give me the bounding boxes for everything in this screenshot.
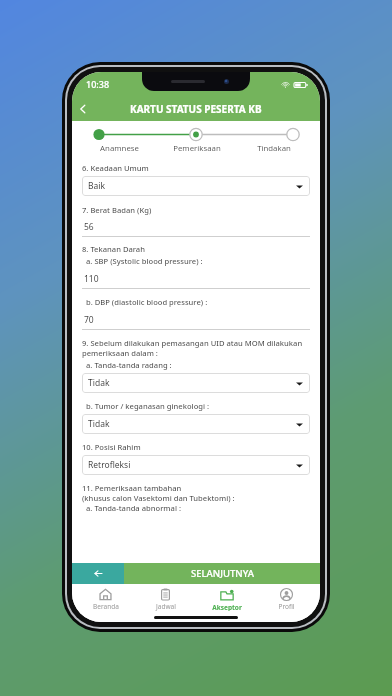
button[interactable]: Akseptor xyxy=(199,586,254,613)
staticText: Tidak xyxy=(88,377,110,389)
staticText: Tidak xyxy=(88,418,110,430)
staticText: 7. Berat Badan (Kg) xyxy=(82,205,152,215)
staticText: Retrofleksi xyxy=(88,459,131,471)
staticText: Anamnese xyxy=(100,143,139,154)
staticText: SELANJUTNYA xyxy=(191,567,254,580)
button[interactable]: Back xyxy=(72,98,94,120)
button[interactable]: 110 xyxy=(82,273,310,289)
staticText: 10. Posisi Rahim xyxy=(82,442,141,452)
staticText: 10:38 xyxy=(86,78,110,90)
button[interactable]: 56 xyxy=(82,221,310,237)
staticText: 11. Pemeriksaan tambahan xyxy=(82,483,182,493)
staticText: Pemeriksaan xyxy=(173,143,221,154)
staticText: 70 xyxy=(84,314,94,326)
staticText: 9. Sebelum dilakukan pemasangan UID atau… xyxy=(82,338,303,348)
staticText: b. DBP (diastolic blood pressure) : xyxy=(86,297,208,307)
button[interactable]: SELANJUTNYA xyxy=(124,563,320,584)
button[interactable]: Jadwal xyxy=(138,586,193,613)
staticText: Akseptor xyxy=(212,603,242,611)
button[interactable]: Beranda xyxy=(78,586,133,613)
button[interactable]: Profil xyxy=(259,586,314,613)
button[interactable]: Tidak xyxy=(82,414,310,434)
staticText: Beranda xyxy=(93,602,119,611)
staticText: KARTU STATUS PESERTA KB xyxy=(130,102,262,116)
staticText: a. Tanda-tanda radang : xyxy=(86,360,172,370)
staticText: Baik xyxy=(88,180,106,192)
button[interactable]: Tidak xyxy=(82,373,310,393)
button[interactable]: 70 xyxy=(82,314,310,330)
staticText: 56 xyxy=(84,221,94,233)
button[interactable]: Retrofleksi xyxy=(82,455,310,475)
staticText: 8. Tekanan Darah xyxy=(82,244,145,254)
staticText: b. Tumor / keganasan ginekologi : xyxy=(86,401,210,411)
staticText: Tindakan xyxy=(257,143,291,154)
staticText: 110 xyxy=(84,273,99,285)
staticText: (khusus calon Vasektomi dan Tubektomi) : xyxy=(82,493,235,503)
staticText: Profil xyxy=(278,602,295,611)
staticText: Jadwal xyxy=(156,602,176,611)
staticText: a. SBP (Systolic blood pressure) : xyxy=(86,256,203,266)
staticText: a. Tanda-tanda abnormal : xyxy=(86,503,181,513)
button[interactable]: Back xyxy=(72,563,124,584)
staticText: pemeriksaan dalam : xyxy=(82,348,158,358)
button[interactable]: Baik xyxy=(82,176,310,196)
staticText: 6. Keadaan Umum xyxy=(82,163,149,173)
